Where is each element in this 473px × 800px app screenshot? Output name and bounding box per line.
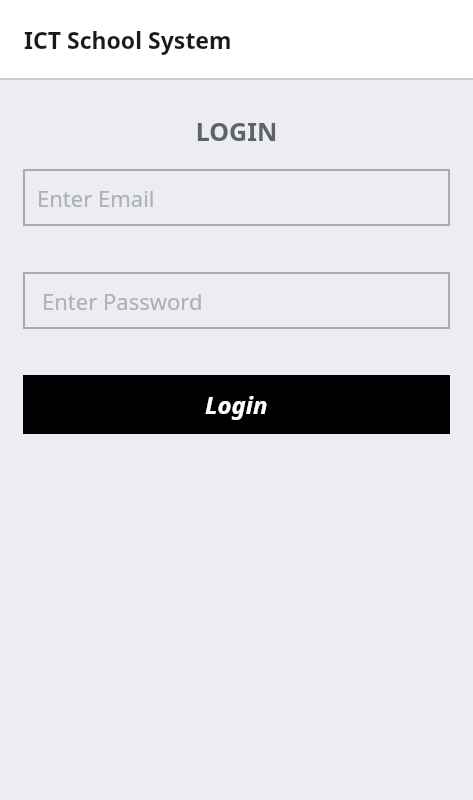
button[interactable]: Enter Password	[23, 272, 450, 329]
button[interactable]: Enter Email	[23, 169, 450, 226]
staticText: Enter Password	[42, 286, 203, 316]
staticText: ICT School System	[24, 24, 232, 55]
staticText: Login	[205, 388, 268, 421]
staticText: Enter Email	[37, 183, 155, 213]
button[interactable]: Login	[23, 375, 450, 434]
staticText: LOGIN	[0, 114, 473, 148]
